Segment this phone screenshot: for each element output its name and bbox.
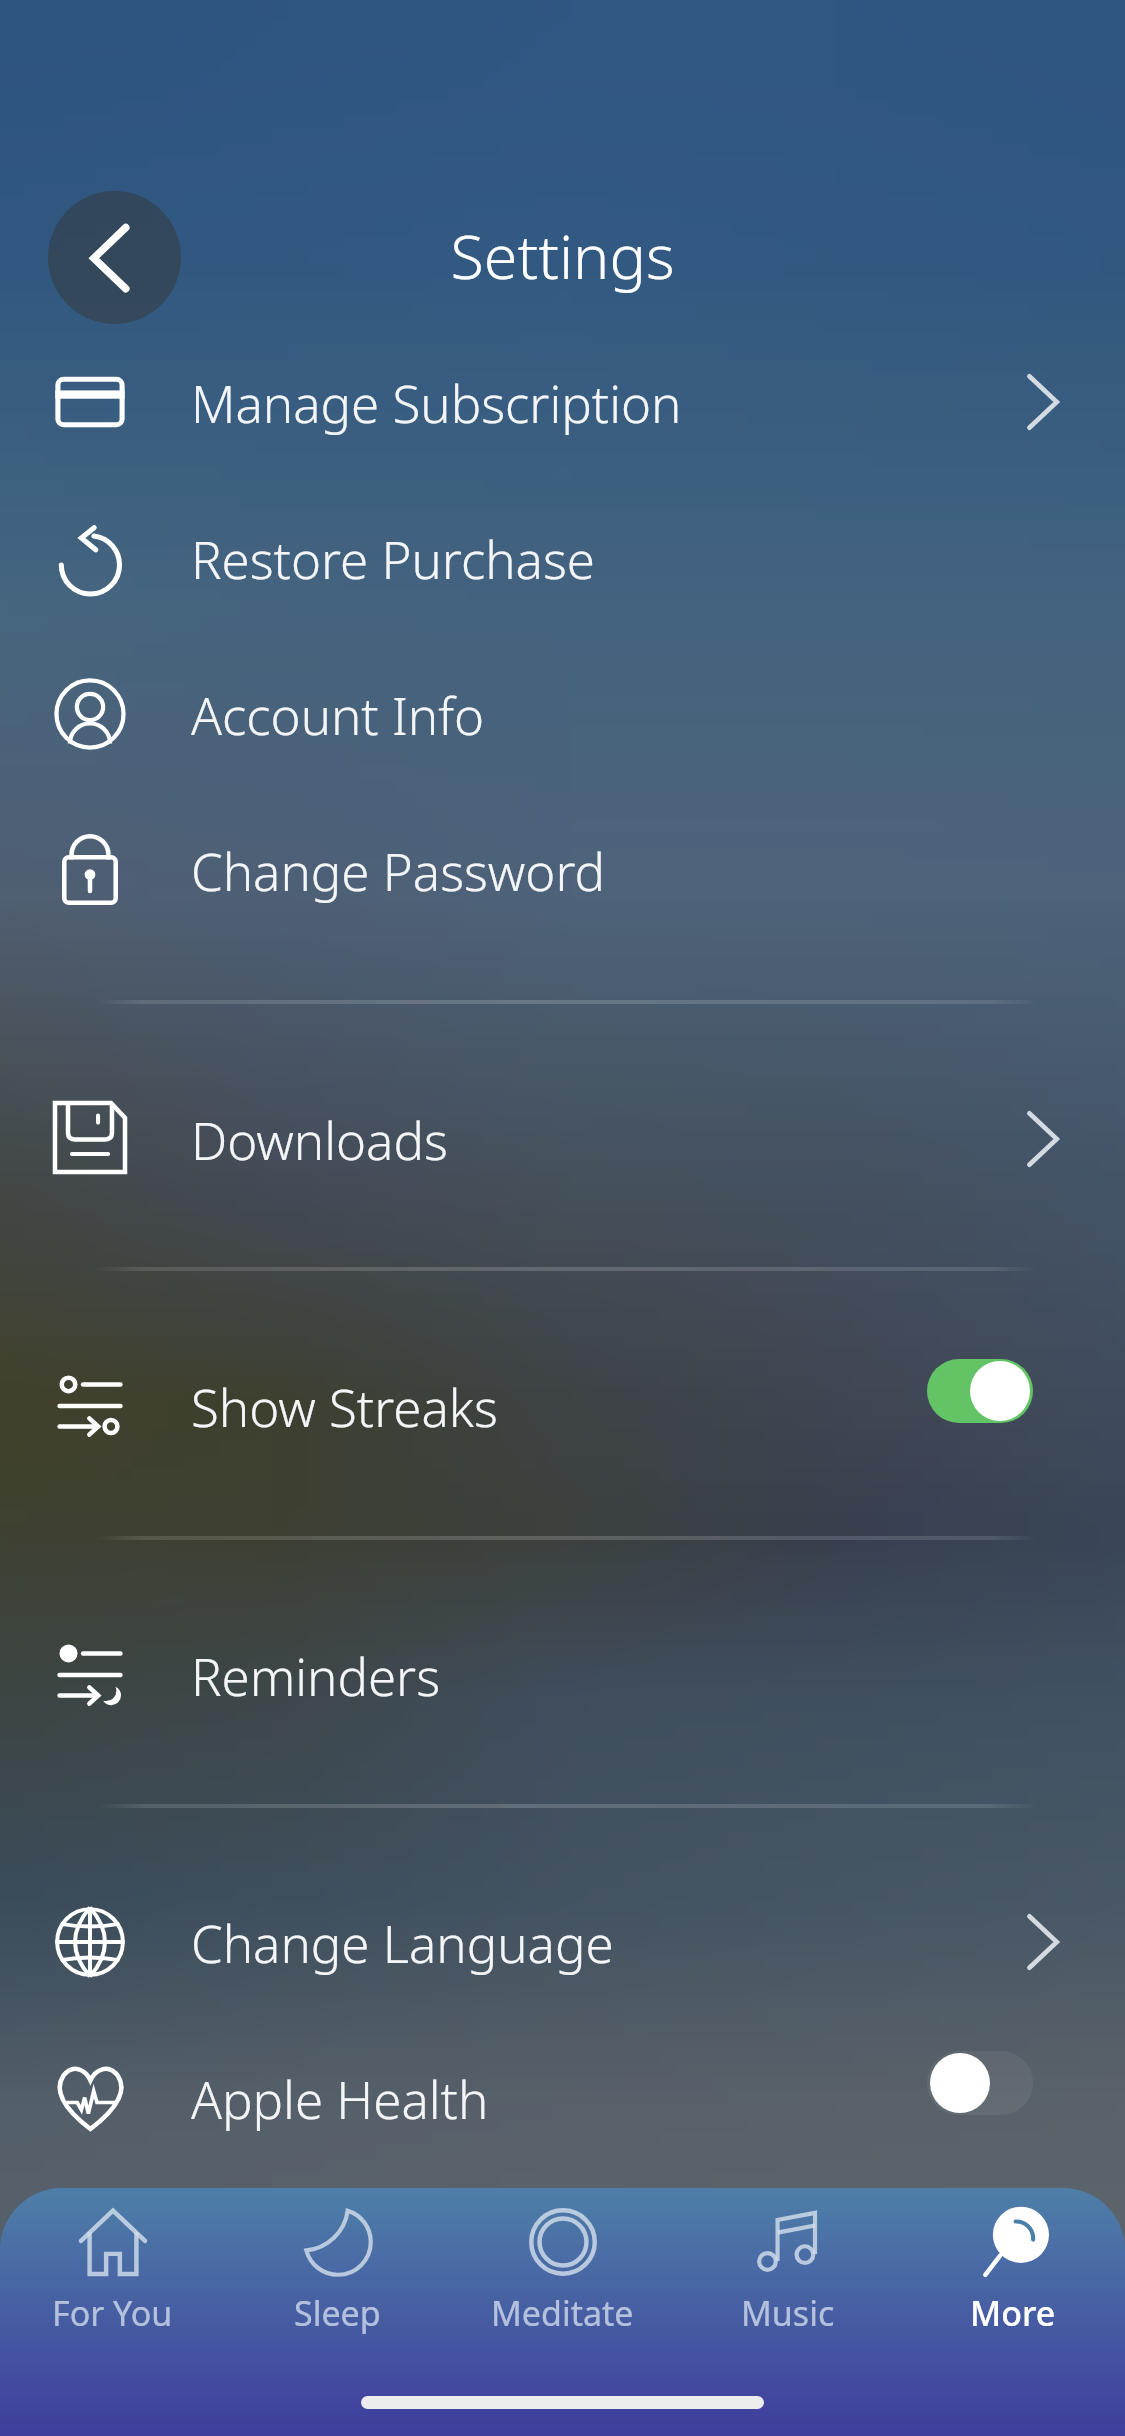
button[interactable]: Back — [48, 191, 181, 324]
staticText: Account Info — [191, 680, 484, 749]
button[interactable]: Downloads — [0, 1064, 1125, 1214]
staticText: Music — [741, 2290, 835, 2336]
button[interactable]: Change Password — [0, 795, 1125, 945]
button[interactable]: Meditate — [450, 2188, 675, 2378]
button[interactable]: Manage Subscription — [0, 327, 1125, 477]
button[interactable]: Sleep — [225, 2188, 450, 2378]
staticText: Show Streaks — [191, 1372, 498, 1441]
button[interactable]: More — [900, 2188, 1125, 2378]
button[interactable]: Show Streaks — [0, 1331, 1125, 1481]
button[interactable]: Apple Health — [0, 2023, 1125, 2173]
button[interactable]: Apple Health toggle — [923, 2023, 1125, 2173]
staticText: Apple Health — [191, 2064, 489, 2133]
staticText: Change Language — [191, 1908, 614, 1977]
staticText: More — [970, 2290, 1056, 2336]
button[interactable]: Reminders — [0, 1600, 1125, 1750]
staticText: Settings — [0, 214, 1125, 297]
staticText: Sleep — [294, 2290, 381, 2336]
staticText: Restore Purchase — [191, 524, 595, 593]
staticText: Reminders — [191, 1641, 441, 1710]
staticText: Change Password — [191, 836, 606, 905]
button[interactable]: Restore Purchase — [0, 483, 1125, 633]
button[interactable]: Change Language — [979, 1867, 1125, 2017]
staticText: For You — [52, 2290, 173, 2336]
staticText: Downloads — [191, 1105, 448, 1174]
button[interactable]: Music — [675, 2188, 900, 2378]
button[interactable]: Downloads — [979, 1064, 1125, 1214]
button[interactable]: Change Language — [0, 1867, 1125, 2017]
staticText: Meditate — [491, 2290, 634, 2336]
button[interactable]: Show Streaks toggle — [923, 1331, 1125, 1481]
staticText: Manage Subscription — [191, 368, 682, 437]
button[interactable]: Account Info — [0, 639, 1125, 789]
button[interactable]: Manage Subscription — [979, 327, 1125, 477]
button[interactable]: For You — [0, 2188, 225, 2378]
